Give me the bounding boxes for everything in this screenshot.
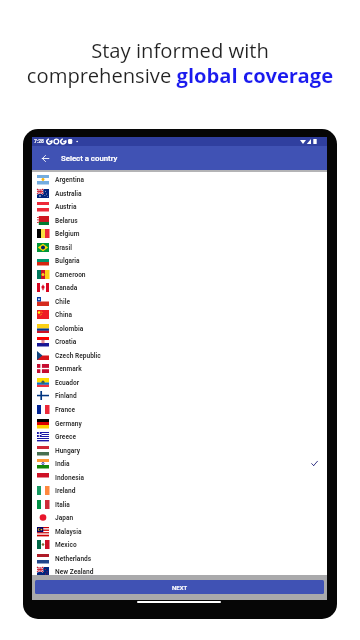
- button[interactable]: Colombia: [32, 321, 327, 336]
- staticText: China: [55, 311, 72, 319]
- staticText: Finland: [55, 392, 77, 400]
- button[interactable]: Netherlands: [32, 551, 327, 566]
- button[interactable]: Belarus: [32, 213, 327, 228]
- staticText: Canada: [55, 284, 78, 292]
- button[interactable]: Chile: [32, 294, 327, 309]
- staticText: Italia: [55, 501, 70, 509]
- button[interactable]: Ecuador: [32, 375, 327, 390]
- staticText: Belarus: [55, 217, 78, 225]
- staticText: Brasil: [55, 244, 72, 252]
- staticText: Cameroon: [55, 271, 86, 279]
- button[interactable]: Czech Republic: [32, 348, 327, 363]
- button[interactable]: Belgium: [32, 226, 327, 241]
- staticText: Austria: [55, 203, 77, 211]
- button[interactable]: China: [32, 307, 327, 322]
- staticText: Ecuador: [55, 379, 80, 387]
- staticText: Colombia: [55, 325, 84, 333]
- staticText: Greece: [55, 433, 76, 441]
- button[interactable]: Mexico: [32, 537, 327, 552]
- staticText: Mexico: [55, 541, 77, 549]
- staticText: France: [55, 406, 76, 414]
- button[interactable]: Ireland: [32, 483, 327, 498]
- staticText: Czech Republic: [55, 352, 101, 360]
- button[interactable]: France: [32, 402, 327, 417]
- staticText: 7:28: [34, 138, 44, 144]
- staticText: Japan: [55, 514, 74, 522]
- button[interactable]: Malaysia: [32, 524, 327, 539]
- button[interactable]: New Zealand: [32, 564, 327, 575]
- staticText: Netherlands: [55, 555, 92, 563]
- staticText: New Zealand: [55, 568, 94, 575]
- button[interactable]: Finland: [32, 388, 327, 403]
- button[interactable]: Greece: [32, 429, 327, 444]
- staticText: Germany: [55, 420, 82, 428]
- staticText: NEXT: [172, 584, 188, 591]
- button[interactable]: Argentina: [32, 172, 327, 187]
- staticText: Malaysia: [55, 528, 82, 536]
- staticText: Select a country: [61, 154, 118, 163]
- staticText: Australia: [55, 190, 82, 198]
- staticText: Chile: [55, 298, 71, 306]
- staticText: Denmark: [55, 365, 82, 373]
- button[interactable]: NEXT: [35, 580, 324, 594]
- staticText: Bulgaria: [55, 257, 80, 265]
- button[interactable]: Hungary: [32, 443, 327, 458]
- button[interactable]: Italia: [32, 497, 327, 512]
- button[interactable]: Croatia: [32, 334, 327, 349]
- button[interactable]: Germany: [32, 416, 327, 431]
- button[interactable]: Japan: [32, 510, 327, 525]
- staticText: Ireland: [55, 487, 76, 495]
- button[interactable]: Denmark: [32, 361, 327, 376]
- staticText: Hungary: [55, 447, 81, 455]
- button[interactable]: Cameroon: [32, 267, 327, 282]
- button[interactable]: Indonesia: [32, 470, 327, 485]
- button[interactable]: Brasil: [32, 240, 327, 255]
- staticText: Croatia: [55, 338, 77, 346]
- staticText: Stay informed with comprehensive global …: [0, 36, 360, 89]
- button[interactable]: India: [32, 456, 327, 471]
- staticText: India: [55, 460, 70, 468]
- staticText: Indonesia: [55, 474, 84, 482]
- button[interactable]: Austria: [32, 199, 327, 214]
- staticText: Argentina: [55, 176, 85, 184]
- staticText: Belgium: [55, 230, 80, 238]
- button[interactable]: Canada: [32, 280, 327, 295]
- button[interactable]: Bulgaria: [32, 253, 327, 268]
- button[interactable]: Back: [32, 146, 58, 170]
- button[interactable]: Australia: [32, 186, 327, 201]
